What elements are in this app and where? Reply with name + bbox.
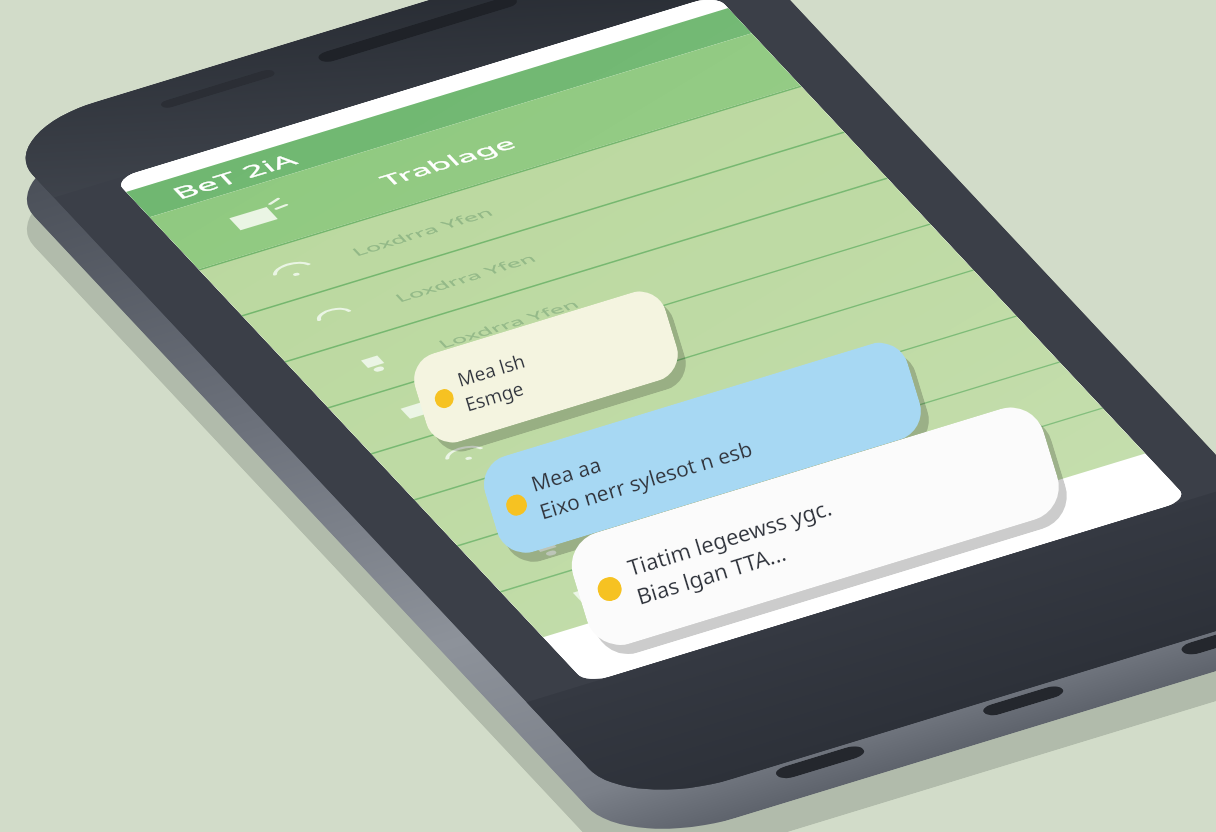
button[interactable]: Loxdrra Yfen (272, 173, 943, 413)
button[interactable]: Trablage (136, 27, 814, 276)
staticText: Mea lsh (454, 347, 529, 393)
staticText: Loxdrra Yfen (344, 203, 500, 261)
button[interactable]: Loxdrra Yfen (229, 127, 900, 367)
staticText: Loxdrra Yfen (387, 249, 543, 307)
button[interactable] (444, 357, 1116, 597)
button[interactable] (487, 403, 1159, 643)
staticText: Loxdrra Yfen (430, 295, 586, 353)
button[interactable]: Tiatim legeewss ygc. (563, 399, 1067, 654)
staticText: Esmge (462, 375, 527, 418)
staticText: Eixo nerr sylesot n esb (536, 434, 756, 526)
staticText: Tiatim legeewss ygc. (624, 491, 835, 582)
button[interactable] (401, 311, 1073, 551)
staticText: Mea aa (527, 450, 605, 499)
staticText: BeT 2iA (163, 146, 306, 206)
button[interactable]: BeT 2iA (112, 5, 765, 220)
button[interactable] (358, 265, 1030, 505)
button[interactable]: Mea aa (476, 335, 928, 560)
staticText: Trablage (371, 130, 525, 193)
button[interactable]: Loxdrra Yfen (186, 81, 857, 321)
button[interactable]: Mea lsh (407, 285, 685, 449)
button[interactable] (315, 219, 986, 459)
staticText: Bias lgan TTA... (633, 537, 790, 611)
